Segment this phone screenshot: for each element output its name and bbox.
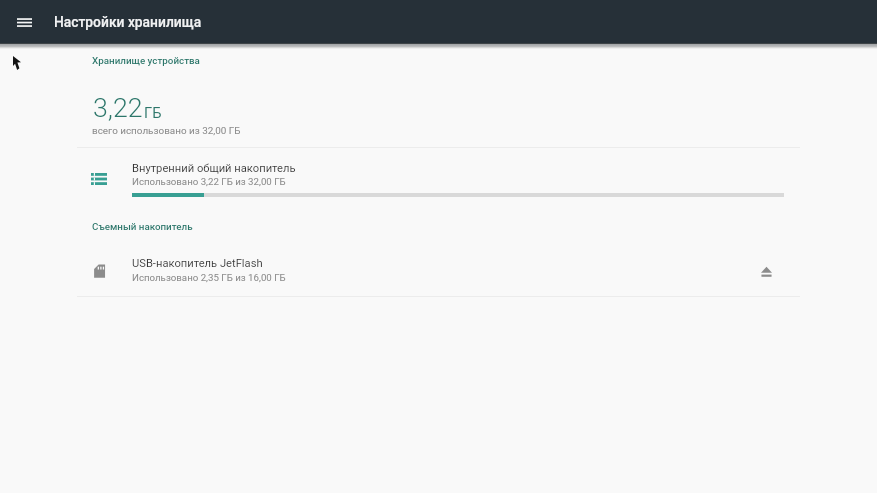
button[interactable]: Eject USB drive <box>750 255 782 287</box>
staticText: Использовано 2,35 ГБ из 16,00 ГБ <box>132 272 286 283</box>
staticText: Использовано 3,22 ГБ из 32,00 ГБ <box>132 176 286 187</box>
staticText: Съемный накопитель <box>92 221 193 232</box>
staticText: всего использовано из 32,00 ГБ <box>92 125 241 137</box>
staticText: USB-накопитель JetFlash <box>132 257 263 270</box>
button[interactable]: USB-накопитель JetFlash <box>0 251 877 296</box>
staticText: 3,22 <box>93 92 143 123</box>
button[interactable]: Внутренний общий накопитель <box>0 152 877 200</box>
button[interactable]: Open navigation menu <box>7 5 41 39</box>
staticText: ГБ <box>144 104 162 121</box>
staticText: Внутренний общий накопитель <box>132 162 296 175</box>
staticText: Хранилище устройства <box>92 55 200 66</box>
staticText: Настройки хранилища <box>54 14 202 30</box>
